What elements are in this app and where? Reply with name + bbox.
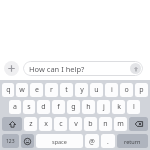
staticText: m	[117, 119, 124, 129]
button[interactable]: 123	[2, 134, 19, 148]
button[interactable]: Send	[130, 63, 141, 74]
button[interactable]: j	[97, 100, 110, 114]
staticText: r	[50, 85, 53, 95]
staticText: f	[57, 102, 60, 112]
staticText: n	[103, 119, 108, 129]
staticText: w	[19, 85, 25, 95]
button[interactable]: i	[105, 83, 118, 97]
button[interactable]: .	[101, 134, 115, 148]
staticText: 123	[6, 138, 15, 145]
button[interactable]: s	[23, 100, 35, 114]
staticText: v	[74, 119, 78, 129]
button[interactable]: Shift	[2, 117, 22, 131]
staticText: b	[88, 119, 93, 129]
staticText: g	[71, 102, 76, 112]
button[interactable]: c	[54, 117, 67, 131]
button[interactable]: a	[9, 100, 21, 114]
staticText: How can I help?	[29, 64, 85, 74]
button[interactable]: k	[112, 100, 125, 114]
staticText: k	[117, 102, 121, 112]
staticText: @	[89, 137, 95, 146]
button[interactable]: p	[135, 83, 148, 97]
button[interactable]: f	[52, 100, 65, 114]
staticText: y	[80, 85, 84, 95]
button[interactable]: y	[75, 83, 88, 97]
button[interactable]: Backspace	[129, 117, 148, 131]
button[interactable]: u	[90, 83, 103, 97]
staticText: l	[133, 102, 135, 112]
button[interactable]: space	[36, 134, 83, 148]
button[interactable]: m	[114, 117, 127, 131]
staticText: d	[41, 102, 46, 112]
button[interactable]: l	[127, 100, 140, 114]
button[interactable]: t	[60, 83, 73, 97]
button[interactable]: d	[37, 100, 50, 114]
button[interactable]: q	[2, 83, 14, 97]
button[interactable]: How can I help?	[23, 61, 143, 76]
staticText: h	[86, 102, 91, 112]
button[interactable]: z	[24, 117, 37, 131]
staticText: s	[27, 102, 31, 112]
button[interactable]: r	[45, 83, 58, 97]
staticText: o	[124, 85, 129, 95]
staticText: t	[65, 85, 68, 95]
staticText: return	[124, 138, 141, 145]
button[interactable]: o	[120, 83, 133, 97]
staticText: p	[139, 85, 144, 95]
staticText: a	[13, 102, 17, 112]
button[interactable]: b	[84, 117, 97, 131]
button[interactable]: w	[16, 83, 28, 97]
staticText: c	[59, 119, 63, 129]
button[interactable]: n	[99, 117, 112, 131]
button[interactable]: h	[82, 100, 95, 114]
button[interactable]: Emoji	[21, 134, 34, 148]
button[interactable]: v	[69, 117, 82, 131]
button[interactable]: return	[117, 134, 148, 148]
staticText: e	[35, 85, 39, 95]
button[interactable]: Add attachment	[4, 61, 19, 76]
staticText: .	[107, 137, 109, 146]
staticText: u	[94, 85, 99, 95]
staticText: x	[44, 119, 48, 129]
staticText: space	[52, 138, 67, 145]
staticText: i	[111, 85, 113, 95]
button[interactable]: x	[39, 117, 52, 131]
button[interactable]: @	[85, 134, 99, 148]
button[interactable]: e	[30, 83, 43, 97]
button[interactable]: g	[67, 100, 80, 114]
staticText: q	[6, 85, 11, 95]
staticText: z	[29, 119, 33, 129]
staticText: j	[103, 102, 105, 112]
